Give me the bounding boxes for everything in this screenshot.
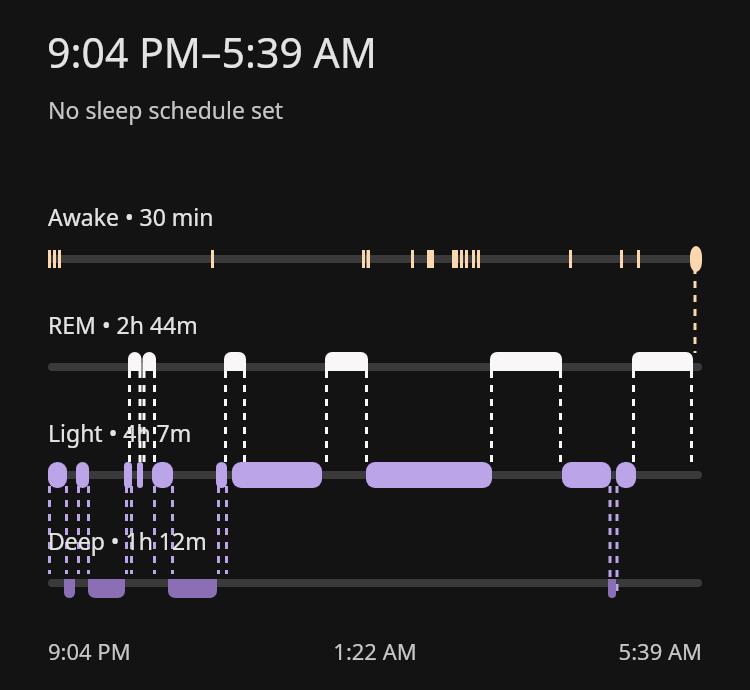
button[interactable]: Light • 4h 7m	[48, 417, 192, 448]
staticText: 9:04 PM–5:39 AM	[47, 24, 377, 80]
button[interactable]: REM • 2h 44m	[48, 309, 198, 340]
button[interactable]: No sleep schedule set	[48, 94, 284, 125]
staticText: 5:39 AM	[484, 636, 702, 666]
staticText: 1:22 AM	[266, 636, 484, 666]
button[interactable]: Awake • 30 min	[48, 201, 214, 232]
staticText: 9:04 PM	[48, 636, 266, 666]
button[interactable]: Sleep stages hypnogram	[0, 0, 750, 690]
button[interactable]: Deep • 1h 12m	[48, 525, 207, 556]
